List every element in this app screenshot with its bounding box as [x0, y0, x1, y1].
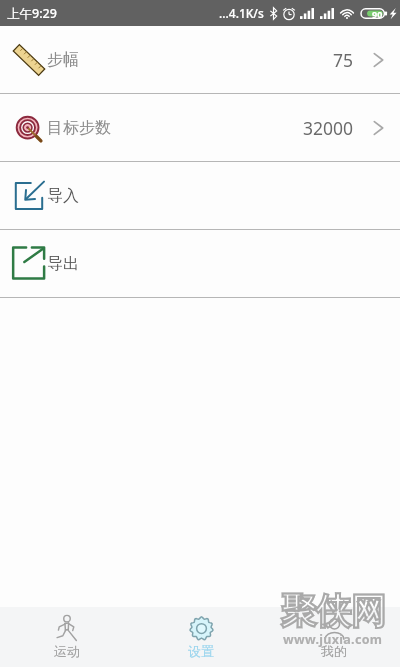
other: 导出 Export: [11, 245, 47, 281]
staticText: 90: [372, 8, 383, 20]
staticText: 步幅: [47, 50, 79, 70]
staticText: 75: [333, 48, 354, 72]
button[interactable]: 目标步数: [0, 94, 400, 161]
staticText: 运动: [54, 643, 80, 659]
staticText: www.juxia.com: [283, 631, 383, 648]
staticText: 导出: [47, 254, 79, 274]
staticText: 设置: [188, 643, 214, 659]
button[interactable]: 导出 Export: [0, 230, 400, 297]
staticText: 导入: [47, 186, 79, 206]
button[interactable]: 导入 Import: [0, 162, 400, 229]
button[interactable]: 设置: [134, 607, 267, 667]
button[interactable]: 步幅: [0, 26, 400, 93]
staticText: 我的: [321, 643, 347, 659]
button[interactable]: 运动: [0, 607, 134, 667]
button[interactable]: 我的: [267, 607, 400, 667]
staticText: 目标步数: [47, 118, 111, 138]
other: 导入 Import: [14, 181, 44, 211]
staticText: 32000: [303, 116, 354, 140]
staticText: ...4.1K/s: [219, 5, 264, 21]
staticText: 聚侠网: [281, 589, 386, 633]
staticText: 上午9:29: [7, 5, 57, 22]
